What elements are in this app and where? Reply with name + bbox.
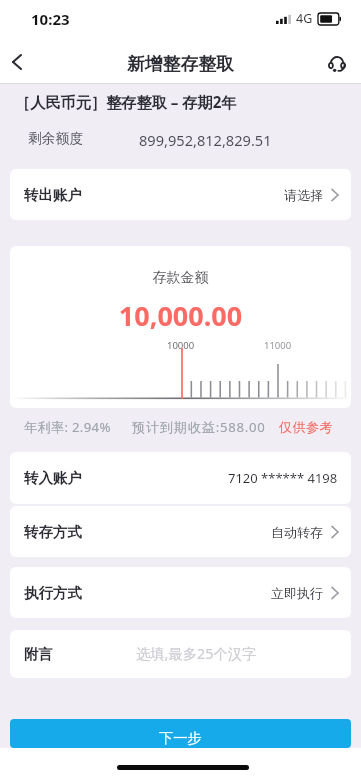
staticText: 附言 bbox=[24, 645, 53, 663]
button[interactable]: 转入账户 bbox=[10, 452, 351, 504]
button[interactable]: 转出账户 bbox=[10, 169, 351, 220]
staticText: 7120 ****** 4198 bbox=[228, 469, 338, 487]
button[interactable]: 下一步 bbox=[10, 719, 351, 748]
staticText: 剩余额度 bbox=[28, 130, 84, 147]
staticText: 请选择 bbox=[284, 187, 323, 203]
staticText: 新增整存整取 bbox=[127, 53, 234, 75]
staticText: 年利率: 2.94% bbox=[24, 418, 111, 436]
button[interactable]: Back bbox=[0, 40, 39, 84]
staticText: 11000 bbox=[264, 339, 292, 352]
staticText: 下一步 bbox=[159, 729, 202, 747]
staticText: 预计到期收益:588.00 bbox=[132, 418, 266, 436]
staticText: 执行方式 bbox=[24, 584, 82, 602]
staticText: 转存方式 bbox=[24, 523, 82, 541]
staticText: 转入账户 bbox=[24, 469, 82, 487]
staticText: 10000 bbox=[167, 339, 195, 352]
staticText: 选填,最多25个汉字 bbox=[136, 644, 257, 664]
staticText: 存款金额 bbox=[10, 269, 351, 287]
staticText: ［人民币元］整存整取 – 存期2年 bbox=[15, 92, 237, 113]
staticText: 10,000.00 bbox=[10, 297, 351, 334]
staticText: 10:23 bbox=[31, 9, 70, 29]
button[interactable]: Customer service bbox=[315, 42, 359, 86]
staticText: 899,952,812,829.51 bbox=[139, 130, 272, 150]
staticText: 立即执行 bbox=[271, 585, 323, 601]
button[interactable]: 转存方式 bbox=[10, 506, 351, 557]
button[interactable]: 执行方式 bbox=[10, 567, 351, 618]
staticText: 转出账户 bbox=[24, 186, 82, 204]
button[interactable]: 附言 bbox=[10, 630, 351, 678]
staticText: 仅供参考 bbox=[279, 419, 333, 436]
staticText: 4G bbox=[296, 10, 313, 27]
staticText: 自动转存 bbox=[271, 524, 323, 540]
